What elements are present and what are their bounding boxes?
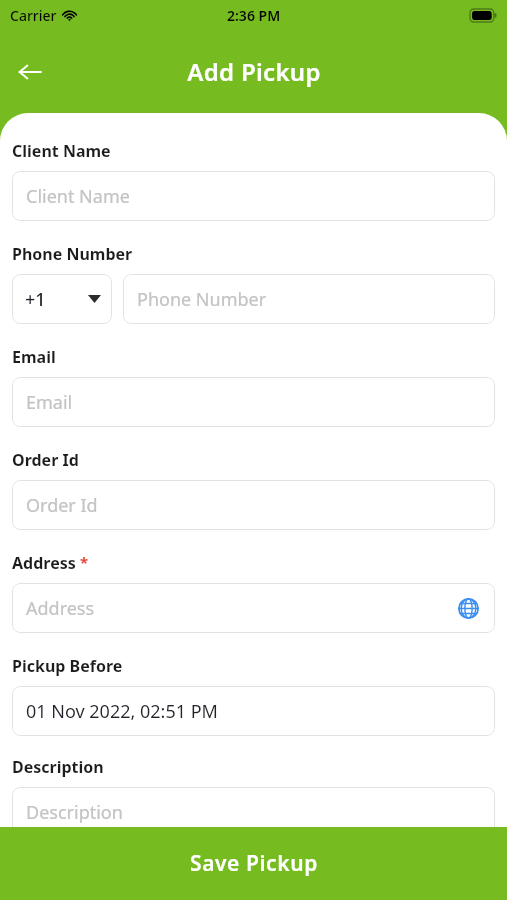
staticText: * xyxy=(80,552,89,572)
staticText: 01 Nov 2022, 02:51 PM xyxy=(26,699,481,724)
staticText: Pickup Before xyxy=(12,655,123,677)
button[interactable]: Back xyxy=(8,50,52,94)
button[interactable]: Email xyxy=(12,377,495,427)
staticText: Description xyxy=(26,800,481,825)
button[interactable]: +1 xyxy=(12,274,112,324)
staticText: Carrier xyxy=(10,6,57,25)
staticText: Add Pickup xyxy=(187,55,321,88)
button[interactable]: Phone Number xyxy=(123,274,495,324)
staticText: Address xyxy=(12,552,76,574)
staticText: Email xyxy=(26,390,481,415)
button[interactable]: Description xyxy=(12,787,495,837)
button[interactable]: 01 Nov 2022, 02:51 PM xyxy=(12,686,495,736)
button[interactable]: Pick address on map xyxy=(455,595,481,621)
staticText: +1 xyxy=(25,287,88,312)
button[interactable]: Address xyxy=(12,583,495,633)
staticText: Email xyxy=(12,346,56,368)
button[interactable]: Order Id xyxy=(12,480,495,530)
staticText: Order Id xyxy=(12,449,79,471)
staticText: 2:36 PM xyxy=(227,6,281,25)
staticText: Client Name xyxy=(26,184,481,209)
button[interactable]: Client Name xyxy=(12,171,495,221)
staticText: Description xyxy=(12,756,104,778)
staticText: Phone Number xyxy=(12,243,133,265)
staticText: Phone Number xyxy=(137,287,481,312)
staticText: Save Pickup xyxy=(190,849,318,878)
staticText: Address xyxy=(26,596,455,621)
staticText: Order Id xyxy=(26,493,481,518)
button[interactable]: Save Pickup xyxy=(0,827,507,900)
staticText: Client Name xyxy=(12,140,111,162)
